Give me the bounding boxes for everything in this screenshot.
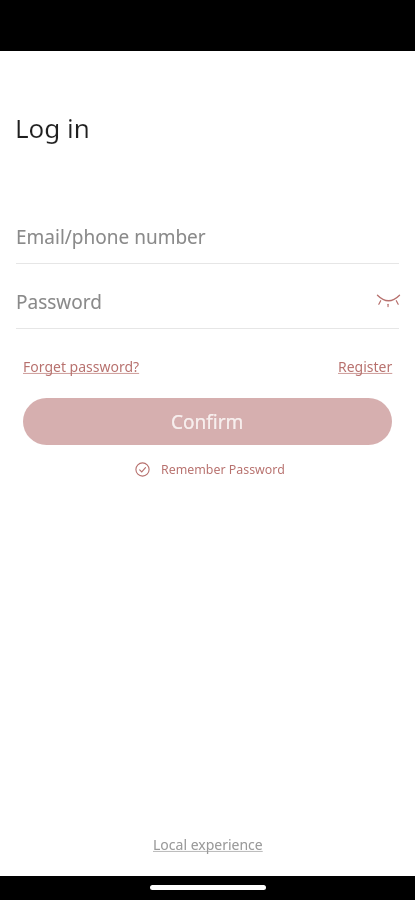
button[interactable]: Register [332,350,399,383]
staticText: Local experience [153,835,263,854]
staticText: Register [338,357,393,376]
button[interactable]: Forget password? [17,350,146,383]
staticText: Remember Password [161,461,285,478]
button[interactable]: Show password [371,282,405,318]
staticText: Forget password? [23,357,140,376]
button[interactable]: Confirm [23,398,392,445]
button[interactable]: Password [16,277,356,325]
staticText: Password [16,289,102,315]
staticText: Log in [15,110,90,145]
button[interactable]: Remember Password [131,457,289,482]
staticText: Email/phone number [16,224,206,250]
button[interactable]: Local experience [143,828,273,861]
button[interactable]: Email/phone number [16,212,399,260]
staticText: Confirm [171,409,244,435]
